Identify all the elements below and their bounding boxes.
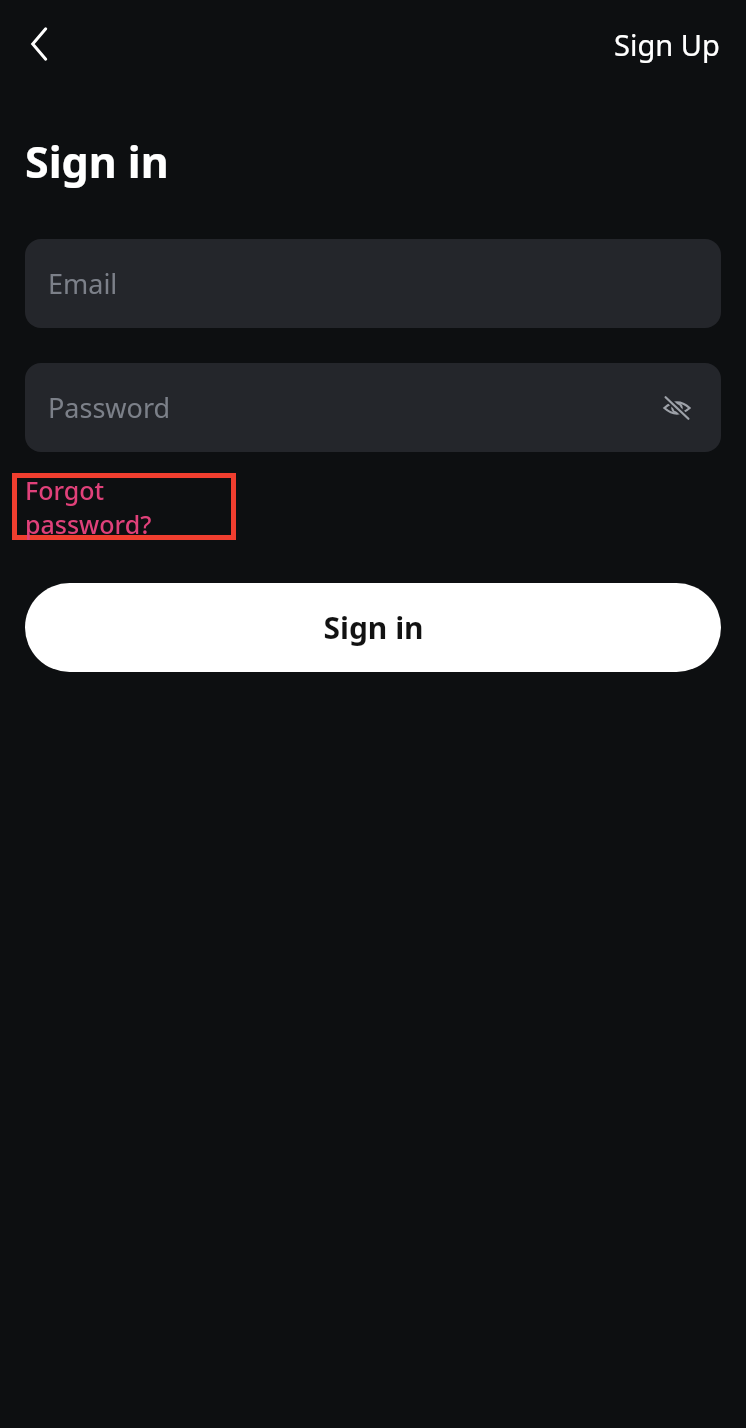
button[interactable]: Email	[25, 239, 721, 328]
button[interactable]: Forgot password?	[12, 473, 236, 540]
button[interactable]: Password	[25, 363, 721, 452]
staticText: Forgot password?	[25, 473, 236, 540]
button[interactable]: Sign in	[25, 583, 721, 672]
button[interactable]: Show password	[653, 384, 701, 432]
staticText: Password	[48, 389, 171, 426]
button[interactable]: Back	[14, 18, 66, 70]
button[interactable]: Sign Up	[600, 17, 734, 72]
staticText: Email	[48, 265, 118, 302]
staticText: Sign in	[323, 607, 424, 648]
staticText: Sign Up	[614, 25, 720, 64]
staticText: Sign in	[25, 132, 169, 191]
